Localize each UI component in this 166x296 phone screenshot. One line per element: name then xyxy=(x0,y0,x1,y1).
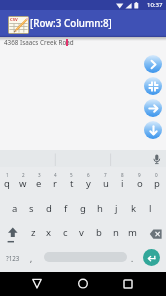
staticText: e xyxy=(36,177,42,190)
button[interactable] xyxy=(147,226,165,243)
button[interactable]: w xyxy=(15,176,31,190)
button[interactable] xyxy=(143,249,160,266)
button[interactable] xyxy=(144,77,162,95)
button[interactable] xyxy=(144,55,162,73)
staticText: . xyxy=(131,253,134,264)
staticText: v xyxy=(79,226,84,239)
staticText: m xyxy=(128,226,137,239)
staticText: CSV xyxy=(10,17,18,23)
button[interactable]: ?123 xyxy=(4,252,21,264)
staticText: g xyxy=(80,202,86,215)
button[interactable]: a xyxy=(7,201,23,215)
staticText: 4368 Isaacs Creek Road xyxy=(4,38,74,47)
button[interactable] xyxy=(75,276,91,292)
staticText: 7 xyxy=(104,172,107,178)
staticText: 6 xyxy=(87,172,90,178)
staticText: r xyxy=(53,177,57,190)
staticText: h xyxy=(97,202,103,215)
button[interactable] xyxy=(4,223,22,245)
staticText: ?123 xyxy=(6,254,20,262)
button[interactable]: n xyxy=(107,225,124,239)
button[interactable]: r xyxy=(47,176,63,190)
button[interactable]: c xyxy=(57,225,73,239)
button[interactable] xyxy=(144,99,162,117)
staticText: x xyxy=(46,226,52,239)
staticText: a xyxy=(12,202,18,215)
staticText: b xyxy=(96,226,102,239)
staticText: j xyxy=(115,202,118,215)
button[interactable]: e xyxy=(31,176,47,190)
button[interactable] xyxy=(120,276,136,292)
staticText: s xyxy=(29,202,34,215)
staticText: n xyxy=(113,226,119,239)
staticText: [Row:3 Column:8] xyxy=(30,17,112,30)
staticText: p xyxy=(154,177,160,190)
staticText: z xyxy=(31,226,36,239)
button[interactable]: s xyxy=(23,201,40,215)
staticText: 1 xyxy=(6,172,9,178)
staticText: d xyxy=(46,202,52,215)
button[interactable]: q xyxy=(0,176,15,190)
staticText: 5 xyxy=(70,172,73,178)
button[interactable]: u xyxy=(97,176,114,190)
button[interactable]: p xyxy=(148,176,165,190)
staticText: 4 xyxy=(54,172,57,178)
button[interactable]: v xyxy=(73,225,90,239)
staticText: t xyxy=(70,177,74,190)
button[interactable]: y xyxy=(80,176,97,190)
button[interactable] xyxy=(44,252,127,262)
button[interactable]: t xyxy=(63,176,80,190)
button[interactable] xyxy=(29,276,45,292)
staticText: l xyxy=(149,202,152,215)
button[interactable]: x xyxy=(41,225,57,239)
button[interactable]: i xyxy=(114,176,131,190)
button[interactable]: o xyxy=(131,176,148,190)
button[interactable]: g xyxy=(74,201,91,215)
staticText: 3 xyxy=(38,172,41,178)
staticText: y xyxy=(86,177,91,190)
staticText: 8 xyxy=(121,172,124,178)
button[interactable] xyxy=(144,121,162,139)
staticText: 2 xyxy=(22,172,25,178)
staticText: w xyxy=(19,177,27,190)
staticText: f xyxy=(64,202,68,215)
staticText: 9 xyxy=(138,172,141,178)
button[interactable]: b xyxy=(90,225,107,239)
button[interactable]: l xyxy=(142,201,159,215)
button[interactable]: f xyxy=(57,201,74,215)
button[interactable]: d xyxy=(40,201,57,215)
staticText: u xyxy=(103,177,109,190)
button[interactable] xyxy=(0,150,166,167)
button[interactable]: h xyxy=(91,201,108,215)
button[interactable]: z xyxy=(25,225,41,239)
staticText: 10:37 xyxy=(147,1,163,9)
button[interactable]: k xyxy=(125,201,142,215)
staticText: c xyxy=(63,226,68,239)
staticText: o xyxy=(137,177,143,190)
button[interactable]: j xyxy=(108,201,125,215)
staticText: i xyxy=(121,177,124,190)
button[interactable]: m xyxy=(124,225,141,239)
button[interactable]: . xyxy=(126,252,138,264)
staticText: k xyxy=(131,202,137,215)
button[interactable]: , xyxy=(25,252,37,264)
staticText: , xyxy=(30,253,33,264)
staticText: q xyxy=(4,177,10,190)
staticText: 0 xyxy=(155,172,158,178)
